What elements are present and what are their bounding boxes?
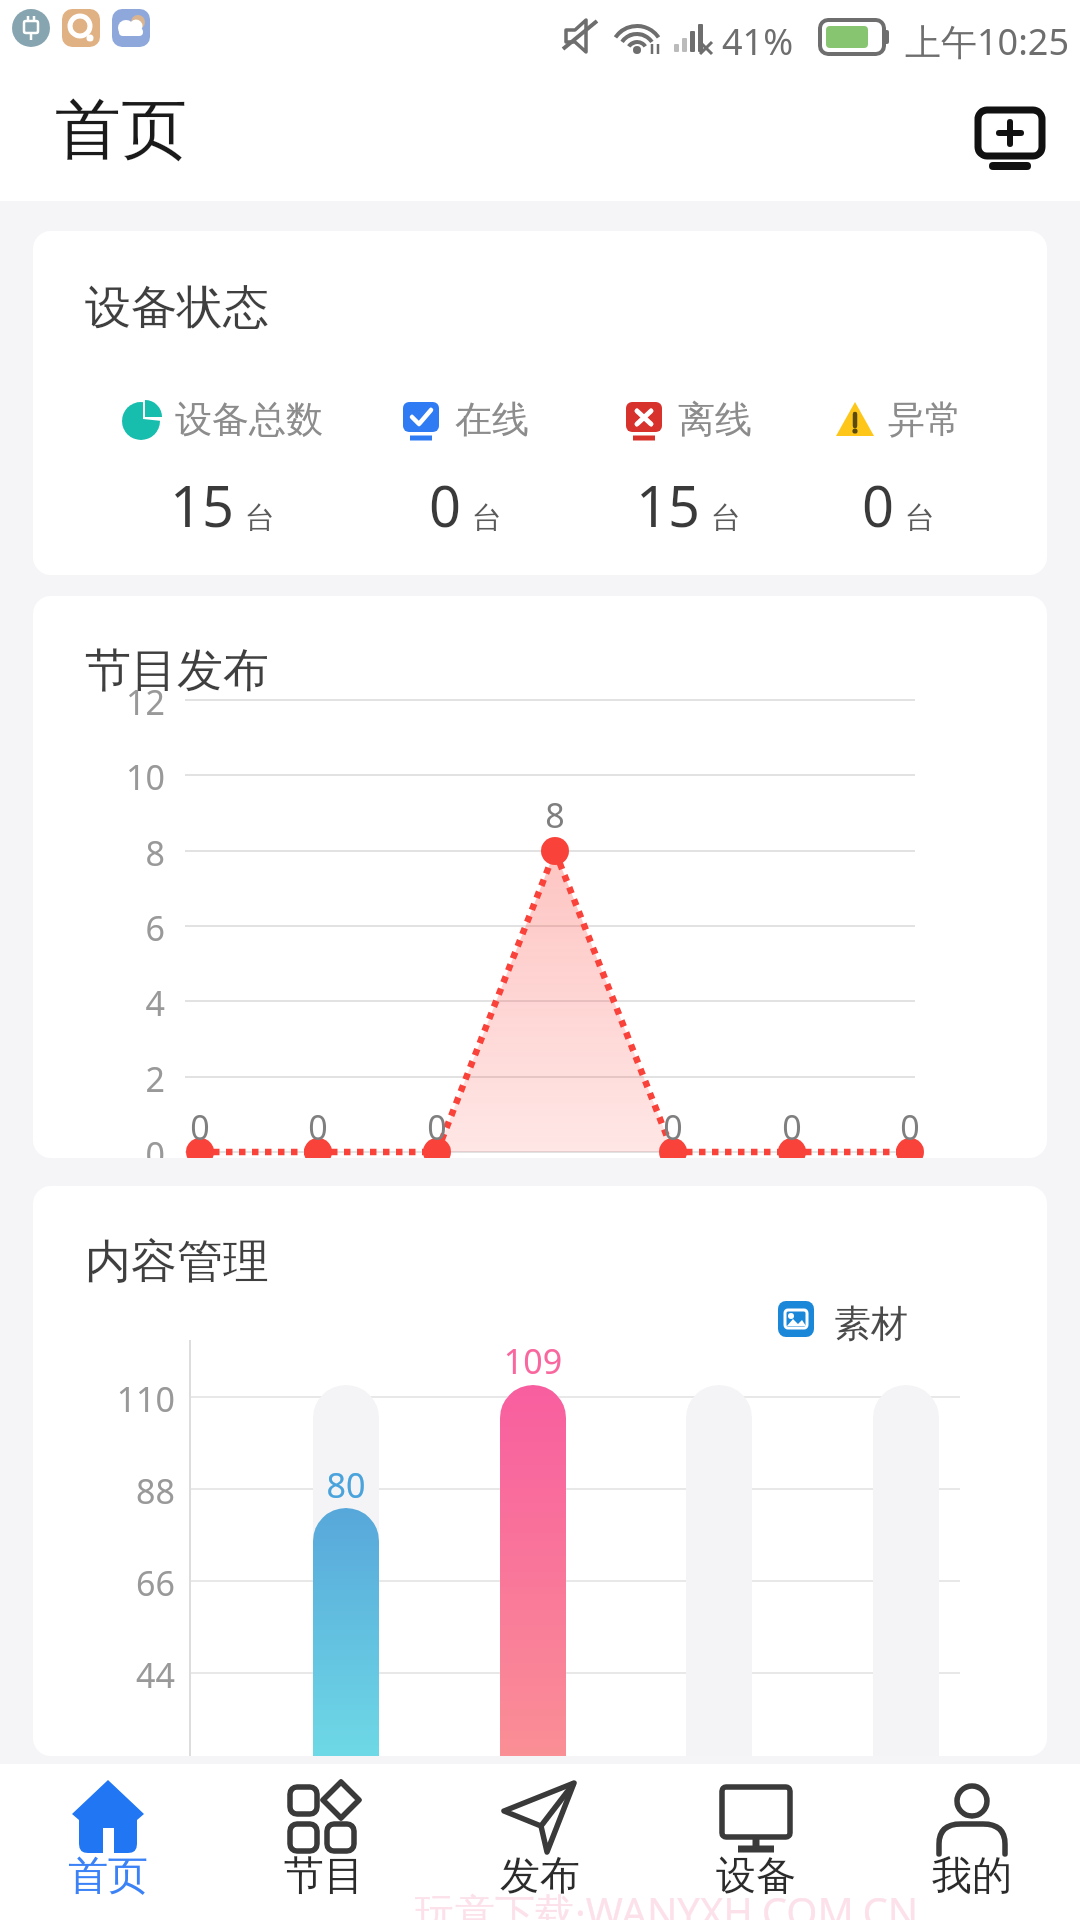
button[interactable]: 在线	[335, 396, 595, 443]
staticText: 0	[880, 1104, 940, 1150]
staticText: 异常	[888, 396, 962, 443]
button[interactable]: 设备总数	[92, 396, 352, 443]
button[interactable]: 离线	[558, 396, 818, 443]
staticText: 8	[525, 792, 585, 838]
staticText: 6	[95, 905, 165, 951]
staticText: 设备状态	[85, 279, 269, 337]
staticText: 设备总数	[175, 396, 323, 443]
staticText: 台	[905, 499, 935, 537]
staticText: 0	[862, 467, 895, 543]
staticText: 15	[170, 467, 235, 543]
button[interactable]: 发布	[432, 1764, 648, 1920]
staticText: 内容管理	[85, 1233, 269, 1291]
staticText: 上午10:25	[905, 17, 1070, 66]
staticText: 0	[170, 1104, 230, 1150]
staticText: 我的	[932, 1850, 1012, 1900]
staticText: 80	[316, 1462, 376, 1508]
staticText: 设备	[716, 1850, 796, 1900]
staticText: 109	[493, 1338, 573, 1384]
staticText: 44	[85, 1652, 175, 1698]
staticText: 节目	[284, 1850, 364, 1900]
staticText: 0	[762, 1104, 822, 1150]
staticText: 15	[636, 467, 701, 543]
staticText: 发布	[500, 1850, 580, 1900]
staticText: 素材	[834, 1300, 908, 1344]
staticText: 节目发布	[85, 642, 269, 700]
button[interactable]: 节目	[216, 1764, 432, 1920]
staticText: 玩意下载·WANYXH.COM.CN	[415, 1884, 919, 1920]
button[interactable]: 异常	[768, 396, 1028, 443]
staticText: 台	[711, 499, 741, 537]
staticText: 41%	[722, 17, 794, 66]
button[interactable]: 首页	[0, 1764, 216, 1920]
staticText: 0	[407, 1104, 467, 1150]
staticText: 在线	[455, 396, 529, 443]
staticText: 离线	[678, 396, 752, 443]
staticText: 首页	[68, 1850, 148, 1900]
staticText: 0	[429, 467, 462, 543]
staticText: 0	[95, 1131, 165, 1158]
staticText: 66	[85, 1560, 175, 1606]
staticText: 2	[95, 1056, 165, 1102]
button[interactable]: 我的	[864, 1764, 1080, 1920]
button[interactable]: 设备	[648, 1764, 864, 1920]
staticText: 12	[95, 679, 165, 725]
staticText: 4	[95, 980, 165, 1026]
button[interactable]	[966, 100, 1050, 176]
staticText: 0	[643, 1104, 703, 1150]
staticText: 8	[95, 830, 165, 876]
staticText: 台	[245, 499, 275, 537]
staticText: 0	[288, 1104, 348, 1150]
staticText: 88	[85, 1468, 175, 1514]
button[interactable]: 素材	[778, 1298, 938, 1342]
staticText: 110	[85, 1376, 175, 1422]
staticText: 10	[95, 754, 165, 800]
staticText: 台	[472, 499, 502, 537]
staticText: 首页	[55, 88, 187, 171]
